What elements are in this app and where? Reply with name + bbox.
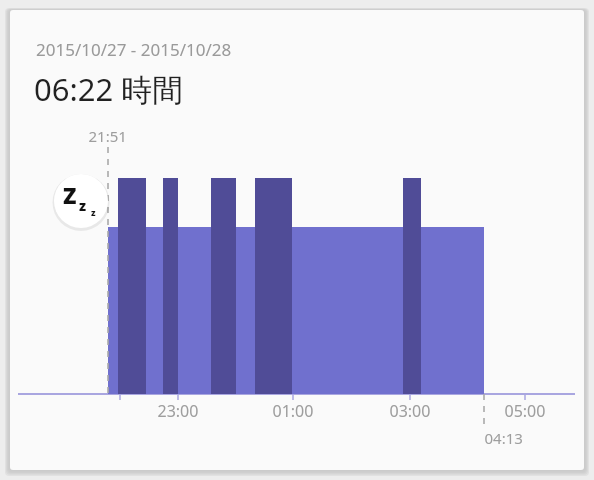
button[interactable]: Sleep chart 2015/10/27 - 2015/10/28, 06:… — [0, 0, 594, 480]
